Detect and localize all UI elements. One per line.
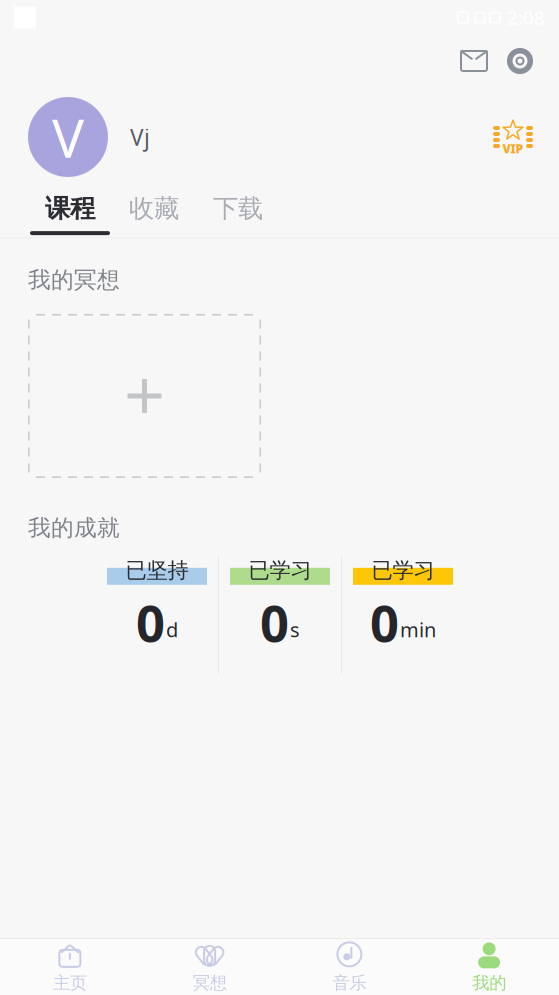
staticText: 已学习: [371, 557, 434, 583]
button[interactable]: Add meditation: [28, 314, 261, 478]
staticText: 已坚持: [125, 557, 188, 583]
button[interactable]: 我的: [419, 934, 559, 995]
button[interactable]: 冥想: [140, 934, 280, 995]
button[interactable]: 主页: [0, 934, 140, 995]
staticText: 音乐: [332, 972, 366, 994]
staticText: 冥想: [193, 972, 227, 994]
staticText: min: [400, 616, 436, 643]
button[interactable]: VIP: [489, 115, 537, 159]
button[interactable]: Messages: [451, 41, 497, 81]
staticText: 0: [370, 589, 399, 656]
staticText: 0: [136, 589, 165, 656]
button[interactable]: 音乐: [279, 934, 419, 995]
staticText: s: [290, 616, 300, 643]
staticText: 我的成就: [28, 514, 120, 542]
staticText: 课程: [45, 193, 95, 224]
button[interactable]: V: [28, 97, 150, 177]
button[interactable]: 课程: [28, 191, 112, 237]
button[interactable]: 收藏: [112, 191, 196, 237]
staticText: V: [52, 102, 84, 172]
staticText: 我的冥想: [28, 266, 120, 294]
staticText: 我的: [472, 972, 506, 994]
staticText: 主页: [53, 972, 87, 994]
staticText: 下载: [213, 193, 263, 224]
staticText: Vj: [130, 122, 150, 152]
staticText: 收藏: [129, 193, 179, 224]
button[interactable]: 下载: [196, 191, 280, 237]
button[interactable]: Settings: [497, 41, 543, 81]
staticText: 0: [260, 589, 289, 656]
staticText: VIP: [502, 140, 523, 156]
staticText: 已学习: [248, 557, 311, 583]
staticText: d: [166, 616, 178, 643]
